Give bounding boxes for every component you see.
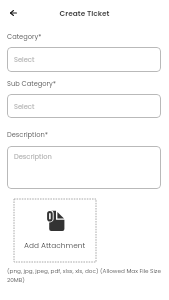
button[interactable]: Description xyxy=(7,146,161,189)
staticText: Description* xyxy=(7,130,48,139)
staticText: Create Ticket xyxy=(0,8,169,18)
button[interactable]: Back xyxy=(5,5,21,21)
staticText: Category* xyxy=(7,32,42,41)
button[interactable]: Add Attachment xyxy=(14,199,96,262)
staticText: Add Attachment xyxy=(24,240,86,250)
staticText: Sub Category* xyxy=(7,79,57,88)
button[interactable]: Select xyxy=(7,47,161,72)
staticText: Select xyxy=(14,55,35,64)
staticText: (png, jpg, jpeg, pdf, xlsx, xls, doc) (A… xyxy=(7,267,163,284)
staticText: Description xyxy=(14,152,52,161)
button[interactable]: Select xyxy=(7,94,161,118)
staticText: Select xyxy=(14,102,35,111)
